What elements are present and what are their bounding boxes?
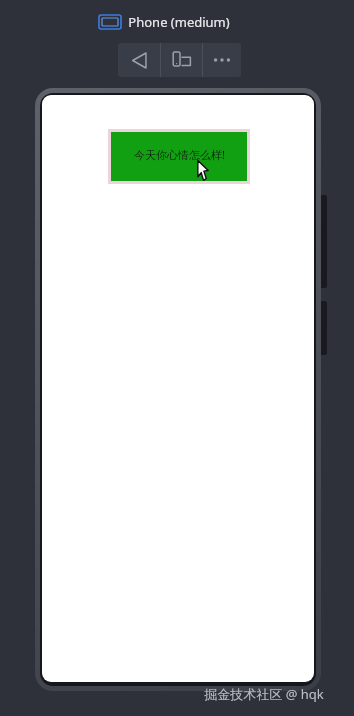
button[interactable]: Run preview [118,43,160,77]
button[interactable]: 今天你心情怎么样! [111,132,247,181]
staticText: Phone (medium) [128,13,230,31]
button[interactable]: Change orientation [161,43,202,77]
staticText: 掘金技术社区 @ hqk [204,685,324,703]
button[interactable]: Device type: phone [99,12,230,32]
staticText: 今天你心情怎么样! [134,147,225,162]
button[interactable]: More options [203,43,241,77]
other: Device type: phone [99,15,121,29]
